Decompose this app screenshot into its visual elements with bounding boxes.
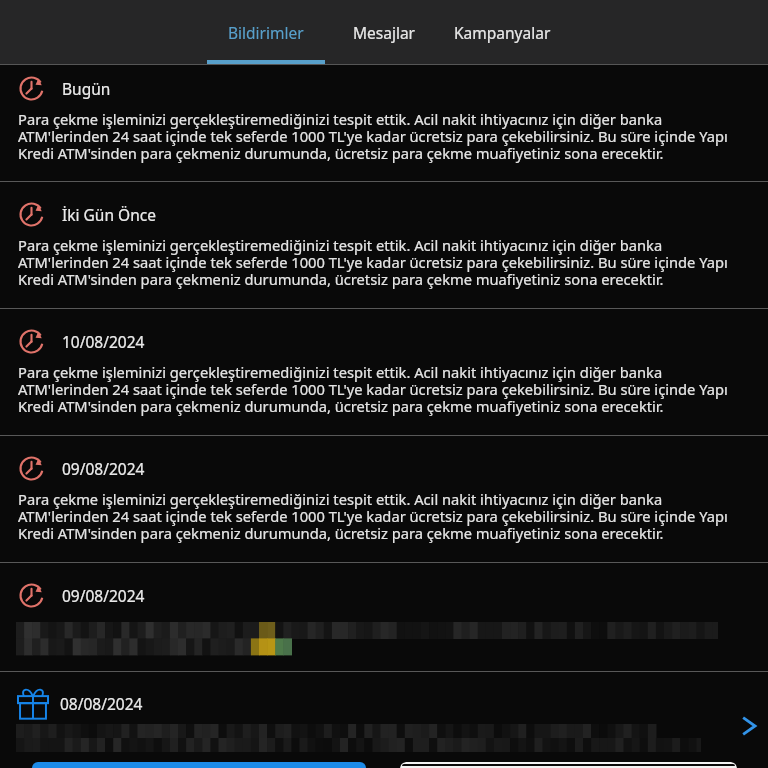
button[interactable]: Kampanyalar xyxy=(443,0,561,64)
button[interactable]: İki Gün Önce xyxy=(0,182,768,289)
button[interactable]: Mesajlar xyxy=(325,0,443,64)
button[interactable]: 09/08/2024 xyxy=(0,563,768,671)
staticText: Bugün xyxy=(62,78,111,99)
staticText: Bildirimler xyxy=(228,22,304,43)
staticText: Mesajlar xyxy=(353,22,416,43)
staticText: Para çekme işleminizi gerçekleştiremediğ… xyxy=(18,109,742,163)
button[interactable]: Bugün xyxy=(0,65,768,163)
button[interactable]: 09/08/2024 xyxy=(0,436,768,543)
button[interactable]: Detayları gör xyxy=(731,709,765,743)
staticText: Para çekme işleminizi gerçekleştiremediğ… xyxy=(18,362,742,416)
staticText: Para çekme işleminizi gerçekleştiremediğ… xyxy=(18,235,742,289)
button[interactable]: 10/08/2024 xyxy=(0,309,768,416)
staticText: 08/08/2024 xyxy=(60,693,143,714)
staticText: 09/08/2024 xyxy=(62,458,145,479)
button[interactable]: Onayla xyxy=(32,762,366,768)
staticText: Kampanyalar xyxy=(454,22,551,43)
button[interactable]: Bildirimler xyxy=(207,0,325,64)
button[interactable]: 08/08/2024 xyxy=(0,672,768,768)
button[interactable]: Vazgeç xyxy=(400,762,737,768)
staticText: 10/08/2024 xyxy=(62,331,145,352)
staticText: İki Gün Önce xyxy=(62,204,156,225)
staticText: Para çekme işleminizi gerçekleştiremediğ… xyxy=(18,489,742,543)
staticText: 09/08/2024 xyxy=(62,585,145,606)
